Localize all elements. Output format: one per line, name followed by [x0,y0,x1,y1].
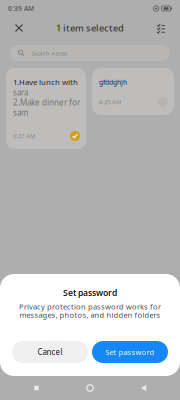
staticText: Cancel [37,347,62,357]
button[interactable]: Close selection [7,18,31,38]
button[interactable]: Back [126,376,160,400]
staticText: gfddghjh [99,78,127,87]
button[interactable]: Recent apps [19,376,53,400]
staticText: sam [13,107,28,118]
staticText: Set password [105,347,154,357]
button[interactable]: gfddghjh [92,68,174,115]
button[interactable]: Select all [149,18,173,38]
button[interactable]: Cancel [12,341,88,363]
staticText: 1.Have lunch with [13,77,78,87]
staticText: messages, photos, and hidden folders [19,310,160,320]
staticText: Search notes [32,49,68,57]
staticText: Set password [63,287,117,299]
staticText: 6:39 AM [8,4,34,13]
staticText: Privacy protection password works for [19,302,161,312]
button[interactable]: Home [73,376,107,400]
staticText: 2.Make dinner for [13,97,80,108]
staticText: sara [13,87,28,98]
staticText: 6:27 AM [13,132,35,140]
button[interactable]: Set password [92,341,168,363]
staticText: 6:25 AM [99,98,121,106]
staticText: 1 item selected [56,22,124,34]
button[interactable]: Search notes [10,45,170,61]
button[interactable]: 1.Have lunch with [6,68,86,149]
